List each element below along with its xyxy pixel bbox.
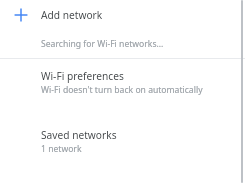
button[interactable]: Add network [0,0,245,30]
staticText: Saved networks [41,128,117,142]
button[interactable]: Wi-Fi preferences [0,66,245,99]
staticText: 1 network [41,143,82,155]
other: Add network [14,8,28,22]
button[interactable]: Saved networks [0,125,245,158]
staticText: Wi-Fi doesn't turn back on automatically [41,84,203,96]
staticText: Wi-Fi preferences [41,69,124,83]
staticText: Searching for Wi-Fi networks… [41,38,164,50]
staticText: Add network [41,8,103,22]
